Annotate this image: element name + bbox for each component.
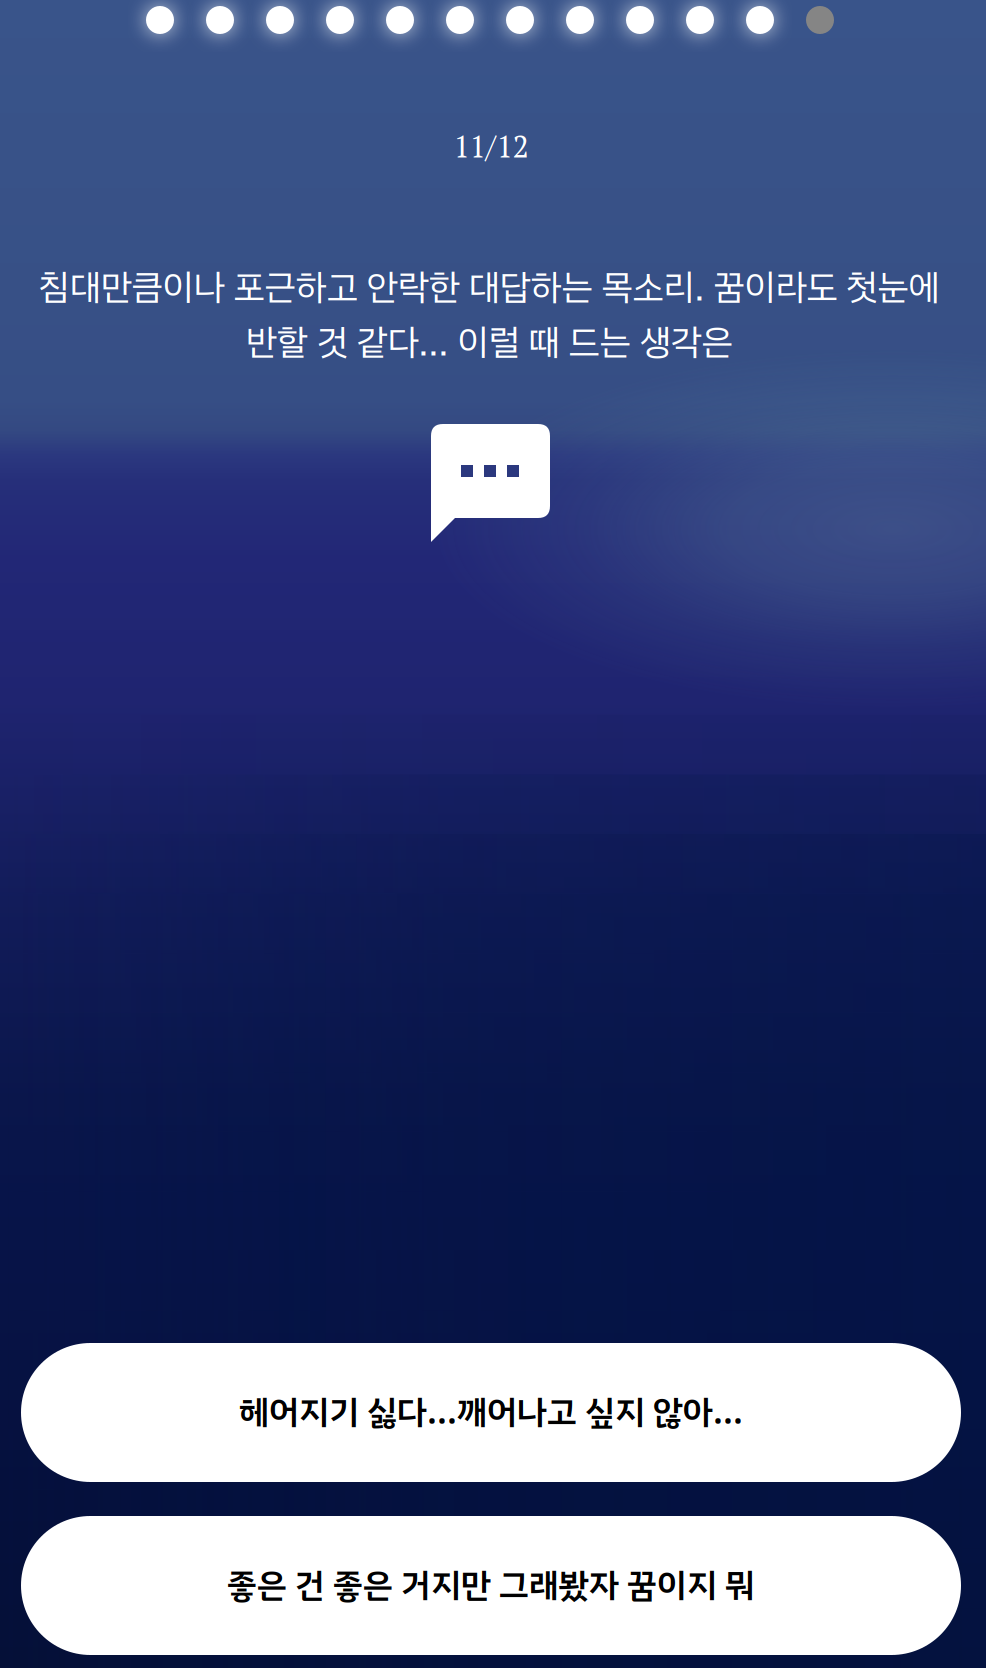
staticText: 헤어지기 싫다...깨어나고 싶지 않아... <box>239 1387 743 1437</box>
staticText: 11/12 <box>453 126 528 166</box>
staticText: 반할 것 같다... 이럴 때 드는 생각은 <box>245 321 732 364</box>
button[interactable]: 좋은 건 좋은 거지만 그래봤자 꿈이지 뭐 <box>21 1516 961 1655</box>
staticText: 좋은 건 좋은 거지만 그래봤자 꿈이지 뭐 <box>227 1560 755 1610</box>
button[interactable]: 헤어지기 싫다...깨어나고 싶지 않아... <box>21 1343 961 1482</box>
staticText: 침대만큼이나 포근하고 안락한 대답하는 목소리. 꿈이라도 첫눈에 <box>38 266 939 309</box>
